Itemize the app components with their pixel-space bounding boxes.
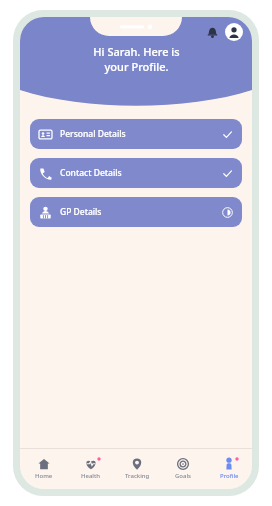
button[interactable]: Tracking <box>114 449 160 489</box>
staticText: Profile <box>220 472 239 480</box>
button[interactable]: Account <box>225 23 243 41</box>
button[interactable]: Personal Details <box>30 119 242 149</box>
staticText: Contact Details <box>60 167 122 179</box>
button[interactable]: Profile <box>206 449 252 489</box>
button[interactable]: Notifications <box>203 23 221 41</box>
staticText: Goals <box>175 472 191 480</box>
staticText: Tracking <box>125 472 150 480</box>
button[interactable]: GP Details <box>30 197 242 227</box>
staticText: Health <box>81 472 101 480</box>
staticText: Home <box>35 472 53 480</box>
button[interactable]: Goals <box>160 449 206 489</box>
staticText: GP Details <box>60 206 102 218</box>
button[interactable]: Home <box>20 449 67 489</box>
button[interactable]: Contact Details <box>30 158 242 188</box>
staticText: Personal Details <box>60 128 126 140</box>
staticText: Hi Sarah. Here is your Profile. <box>93 44 180 74</box>
button[interactable]: Health <box>67 449 114 489</box>
